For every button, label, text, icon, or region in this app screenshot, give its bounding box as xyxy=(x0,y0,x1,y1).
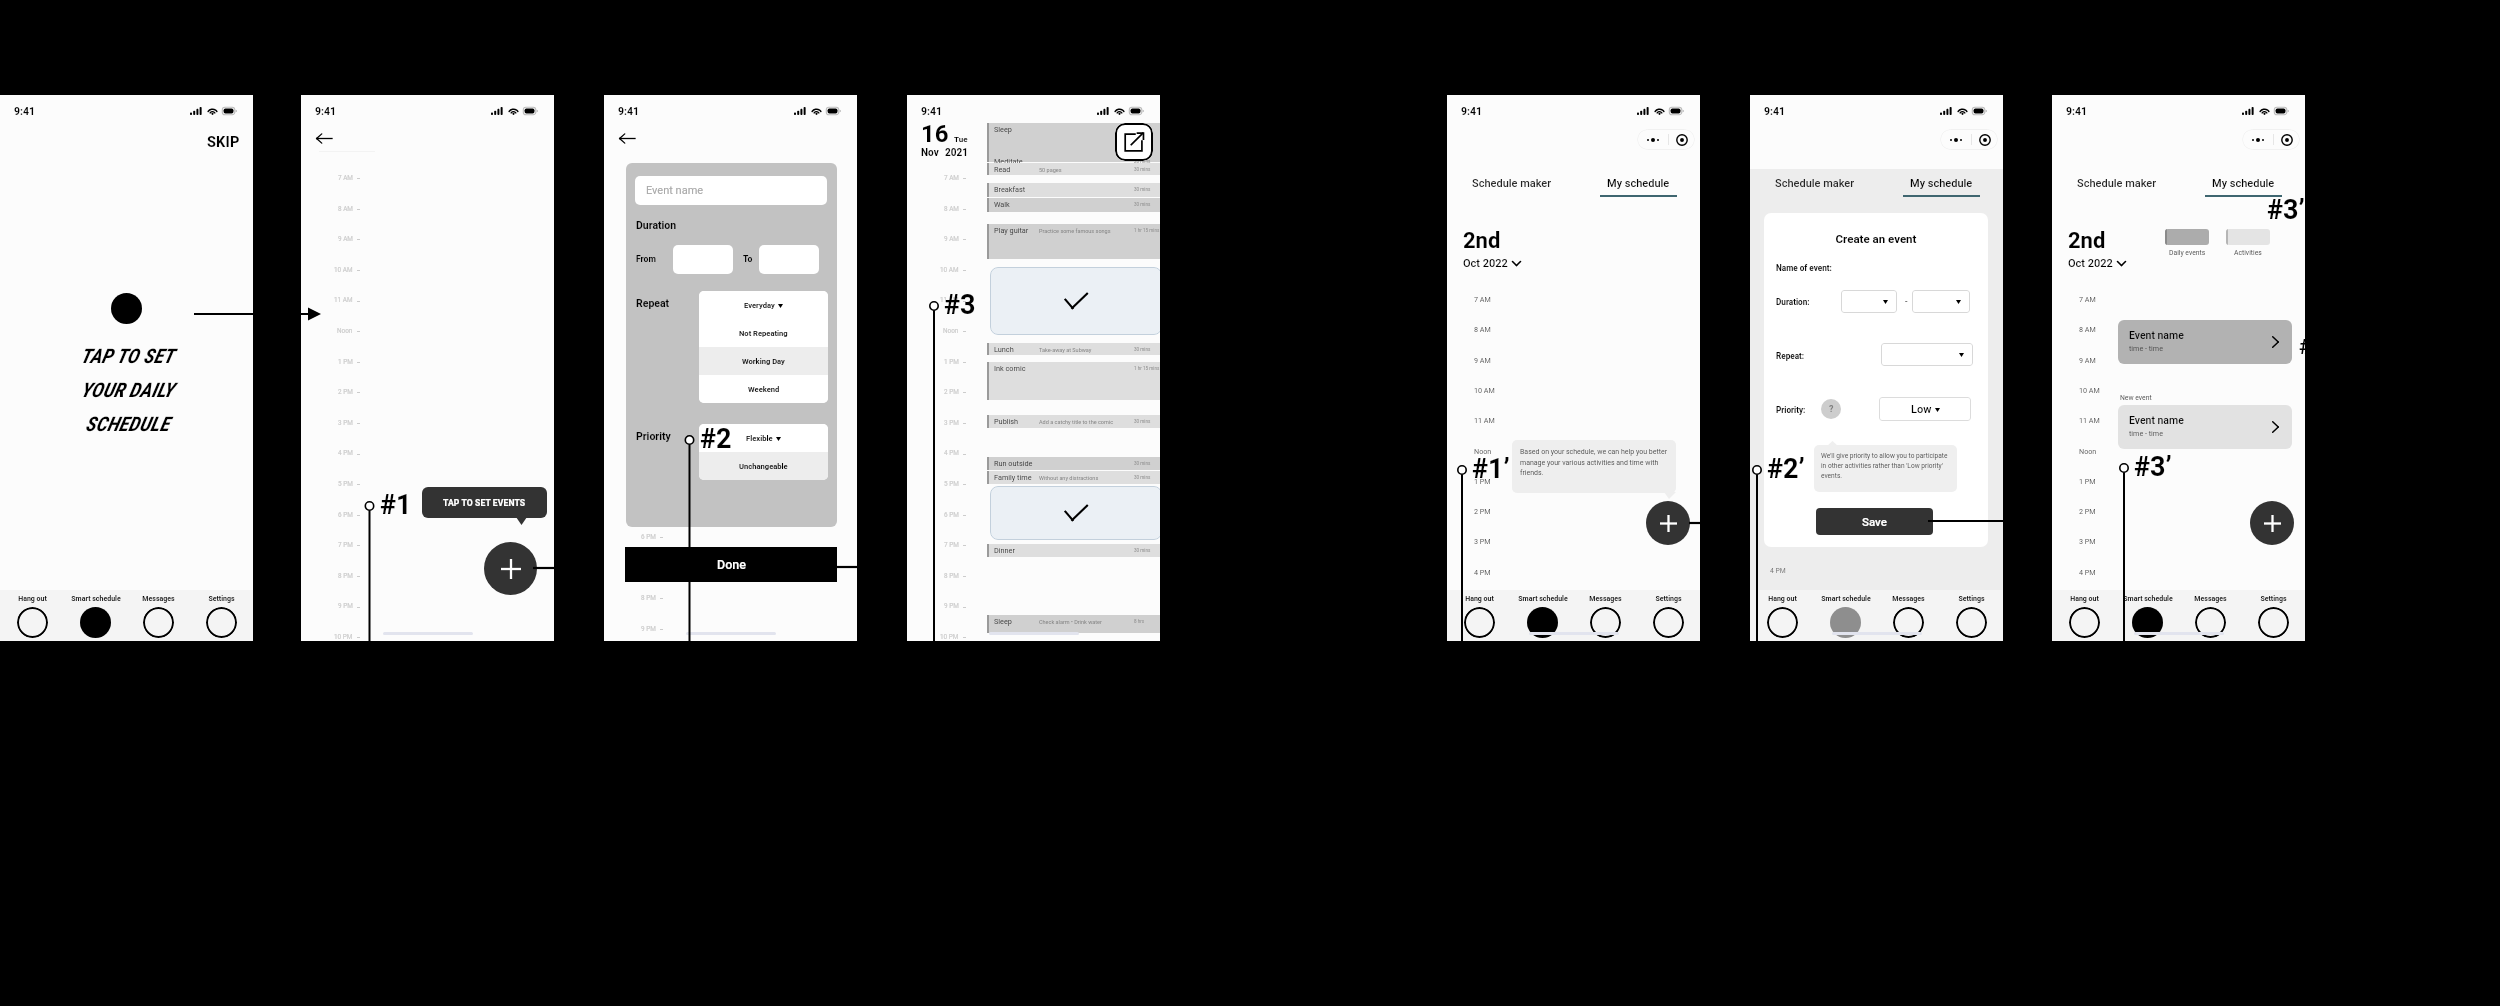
button[interactable]: Record xyxy=(1669,129,1695,150)
staticText: 9 AM xyxy=(1474,356,1491,364)
staticText: 4 PM xyxy=(2079,568,2096,576)
staticText: Low xyxy=(1911,403,1932,416)
button[interactable]: Back xyxy=(316,129,338,147)
button[interactable]: Publish xyxy=(987,415,1160,428)
staticText: Duration xyxy=(636,219,677,231)
button[interactable]: Record xyxy=(1972,129,1998,150)
button[interactable]: Event name xyxy=(635,176,827,205)
button[interactable]: Help about priority xyxy=(1821,399,1841,419)
button[interactable]: Settings xyxy=(1637,590,1700,641)
button[interactable]: Event name xyxy=(2118,405,2292,449)
button[interactable]: Play guitar xyxy=(987,224,1160,259)
staticText: 3 PM xyxy=(2079,537,2096,545)
button[interactable]: Schedule maker xyxy=(1771,174,1859,193)
button[interactable]: Working Day xyxy=(699,347,828,375)
staticText: Settings xyxy=(1655,595,1682,603)
button[interactable]: Oct 2022 xyxy=(2068,257,2126,270)
button[interactable]: Messages xyxy=(127,590,190,641)
staticText: Not Repeating xyxy=(739,329,788,338)
staticText: Priority: xyxy=(1776,405,1806,415)
button[interactable]: Weekend xyxy=(699,375,828,403)
button[interactable]: Walk xyxy=(987,198,1160,212)
button[interactable]: Add event xyxy=(1646,501,1690,545)
staticText: Smart schedule xyxy=(2123,595,2173,603)
staticText: 10 PM xyxy=(334,633,353,641)
button[interactable]: Everyday xyxy=(699,291,828,319)
button[interactable] xyxy=(990,267,1160,335)
button[interactable]: Low xyxy=(1879,397,1971,421)
button[interactable]: Hang out xyxy=(0,590,64,641)
button[interactable]: Hang out xyxy=(2052,590,2116,641)
button[interactable]: Flexible xyxy=(699,424,828,452)
staticText: 50 pages xyxy=(1039,167,1062,173)
staticText: 20 mins xyxy=(1134,159,1151,164)
button[interactable]: Settings xyxy=(2242,590,2305,641)
button[interactable]: Not Repeating xyxy=(699,319,828,347)
button[interactable]: Meditate xyxy=(987,155,1160,162)
button[interactable]: Oct 2022 xyxy=(1463,257,1521,270)
button[interactable]: Schedule maker xyxy=(2073,174,2161,193)
button[interactable] xyxy=(1841,290,1897,313)
button[interactable]: Messages xyxy=(2179,590,2242,641)
staticText: Create an event xyxy=(1764,232,1988,245)
button[interactable] xyxy=(1881,343,1973,366)
button[interactable]: My schedule xyxy=(1600,174,1677,197)
button[interactable]: My schedule xyxy=(2205,174,2282,197)
button[interactable]: Sleep xyxy=(987,123,1160,155)
button[interactable] xyxy=(1912,290,1970,313)
button[interactable]: Share xyxy=(1115,123,1153,161)
button[interactable]: Schedule maker xyxy=(1468,174,1556,193)
button[interactable]: Done xyxy=(625,547,837,582)
button[interactable]: My schedule xyxy=(1903,174,1980,197)
button[interactable]: Unchangeable xyxy=(699,452,828,480)
button[interactable]: Smart schedule xyxy=(64,590,127,641)
staticText: Hang out xyxy=(1768,595,1797,603)
button[interactable]: Ink comic xyxy=(987,362,1160,400)
button[interactable]: Read xyxy=(987,163,1160,175)
button[interactable]: Smart schedule xyxy=(1511,590,1574,641)
button[interactable]: More options xyxy=(2242,129,2273,150)
button[interactable]: Breakfast xyxy=(987,183,1160,197)
button[interactable]: Run outside xyxy=(987,457,1160,470)
button[interactable]: Sleep xyxy=(987,615,1160,633)
button[interactable]: Add event xyxy=(2250,501,2294,545)
button[interactable]: Back xyxy=(619,129,641,147)
button[interactable]: Smart schedule xyxy=(1814,590,1877,641)
staticText: Without any distractions xyxy=(1039,475,1099,481)
staticText: Lunch xyxy=(994,345,1014,354)
button[interactable]: Hang out xyxy=(1447,590,1511,641)
staticText: Take-away at Subway xyxy=(1039,347,1092,353)
staticText: Settings xyxy=(2260,595,2287,603)
staticText: We'll give priority to allow you to part… xyxy=(1821,452,1952,479)
button[interactable]: More options xyxy=(1940,129,1971,150)
staticText: #2’ xyxy=(1767,453,1805,485)
staticText: Repeat: xyxy=(1776,351,1805,361)
staticText: 9:41 xyxy=(1461,105,1483,117)
button[interactable]: Family time xyxy=(987,471,1160,484)
button[interactable]: Lunch xyxy=(987,343,1160,355)
staticText: 7 AM xyxy=(338,174,353,182)
button[interactable]: Smart schedule xyxy=(2116,590,2179,641)
staticText: Breakfast xyxy=(994,185,1026,194)
button[interactable]: Add event xyxy=(484,542,537,595)
button[interactable]: Set daily schedule xyxy=(111,293,142,324)
button[interactable]: Messages xyxy=(1574,590,1637,641)
button[interactable]: Settings xyxy=(1940,590,2003,641)
button[interactable]: Settings xyxy=(190,590,253,641)
button[interactable]: Record xyxy=(2274,129,2300,150)
staticText: 10 PM xyxy=(940,633,959,641)
button[interactable]: Hang out xyxy=(1750,590,1814,641)
staticText: 8 PM xyxy=(338,572,353,580)
button[interactable]: Save xyxy=(1816,508,1933,535)
button[interactable]: Event name xyxy=(2118,320,2292,364)
button[interactable]: More options xyxy=(1637,129,1668,150)
button[interactable]: Messages xyxy=(1877,590,1940,641)
button[interactable] xyxy=(990,486,1160,540)
button[interactable] xyxy=(673,245,733,274)
staticText: Ink comic xyxy=(994,364,1026,373)
button[interactable]: Dinner xyxy=(987,544,1160,557)
staticText: New event xyxy=(2120,394,2152,402)
button[interactable]: SKIP xyxy=(199,129,248,156)
button[interactable] xyxy=(759,245,819,274)
staticText: 7 AM xyxy=(1474,295,1491,303)
